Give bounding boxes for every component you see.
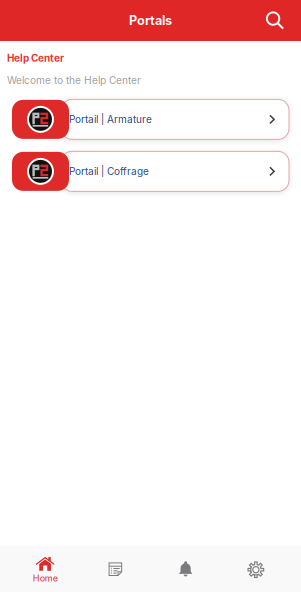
button[interactable]: Settings	[221, 546, 291, 592]
button[interactable]: Search	[257, 2, 293, 38]
button[interactable]: Documents	[80, 546, 150, 592]
staticText: Portail | Coffrage	[69, 165, 149, 177]
button[interactable]: Home	[10, 546, 80, 592]
button[interactable]: Portail | Armature	[12, 99, 289, 139]
button[interactable]: Notifications	[150, 546, 221, 592]
staticText: Welcome to the Help Center	[7, 74, 141, 86]
button[interactable]: Portail | Coffrage	[12, 151, 289, 191]
staticText: Portail | Armature	[69, 113, 152, 125]
staticText: Home	[33, 573, 58, 584]
staticText: Help Center	[7, 52, 64, 64]
staticText: Portals	[129, 13, 172, 28]
